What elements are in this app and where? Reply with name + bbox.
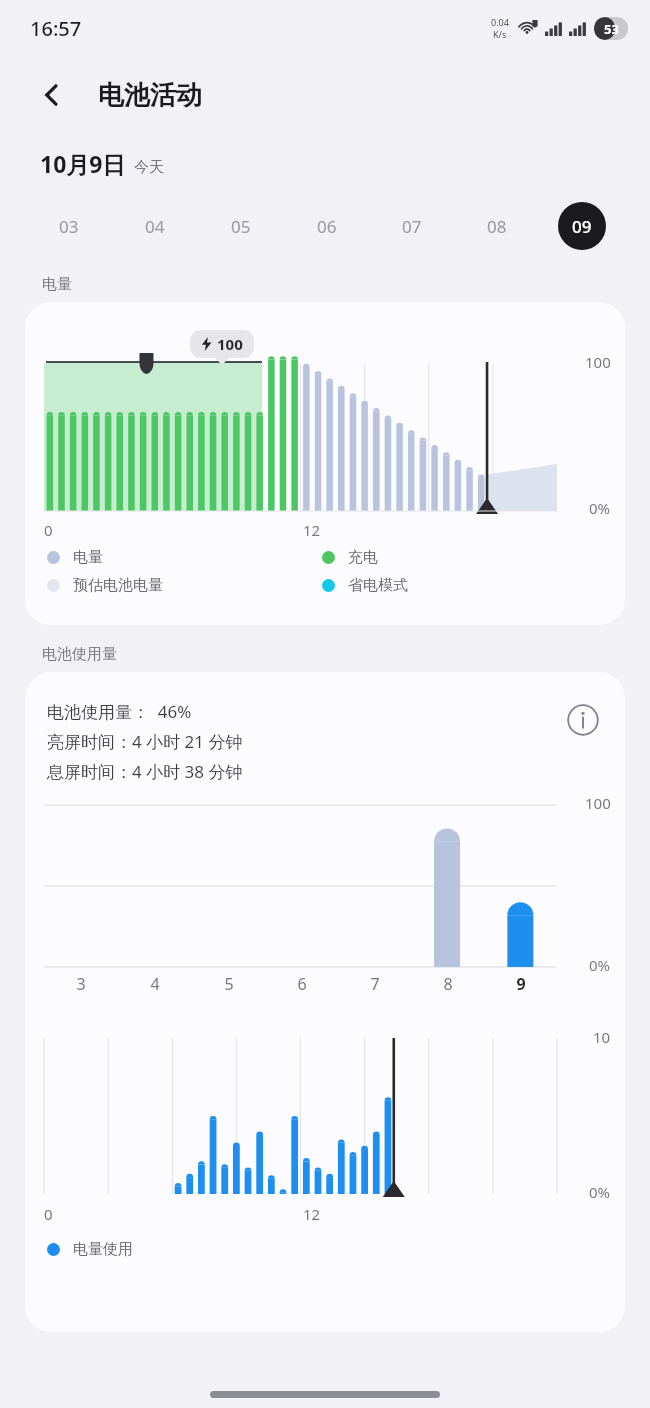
staticText: 预估电池电量	[73, 576, 163, 595]
staticText: 0%	[589, 1182, 611, 1202]
staticText: 电量	[73, 548, 103, 567]
staticText: 07	[402, 215, 422, 238]
staticText: 08	[487, 215, 507, 238]
staticText: 16:57	[30, 15, 82, 42]
staticText: 3	[76, 973, 86, 995]
staticText: 省电模式	[348, 576, 408, 595]
staticText: 05	[231, 215, 251, 238]
staticText: 充电	[348, 548, 378, 567]
staticText: 10月9日	[40, 148, 126, 179]
staticText: 100	[585, 352, 611, 372]
staticText: 亮屏时间：4 小时 21 分钟	[47, 730, 243, 753]
staticText: 09	[572, 215, 592, 238]
button[interactable]: 05	[198, 199, 284, 253]
staticText: 03	[59, 215, 79, 238]
button[interactable]: 08	[454, 199, 539, 253]
staticText: 0	[44, 1204, 53, 1224]
staticText: 6	[297, 973, 307, 995]
button[interactable]: 100	[25, 302, 625, 625]
staticText: 电池使用量： 46%	[47, 700, 192, 723]
button[interactable]: 电池使用量： 46%	[25, 672, 625, 1332]
button[interactable]: Back	[28, 71, 76, 119]
button[interactable]: 04	[112, 199, 198, 253]
staticText: 5	[224, 973, 234, 995]
button[interactable]: 03	[26, 199, 112, 253]
staticText: 9	[516, 973, 526, 995]
staticText: 息屏时间：4 小时 38 分钟	[47, 760, 243, 783]
staticText: 4	[150, 973, 160, 995]
staticText: 电量使用	[73, 1240, 133, 1259]
button[interactable]: 07	[369, 199, 454, 253]
staticText: 04	[145, 215, 165, 238]
staticText: 电池使用量	[42, 645, 117, 664]
staticText: 06	[317, 215, 337, 238]
staticText: 0.04	[491, 16, 509, 28]
staticText: 12	[303, 1204, 321, 1224]
staticText: K/s	[493, 28, 507, 40]
button[interactable]: 06	[284, 199, 369, 253]
staticText: 0%	[589, 955, 611, 975]
staticText: 0	[44, 520, 53, 540]
staticText: 电池活动	[98, 79, 202, 112]
button[interactable]: Info	[563, 700, 603, 740]
staticText: 电量	[42, 275, 72, 294]
staticText: 0%	[589, 498, 611, 518]
button[interactable]: 09	[539, 199, 624, 253]
staticText: 100	[585, 793, 611, 813]
staticText: 53	[604, 20, 619, 38]
staticText: 8	[443, 973, 453, 995]
staticText: 10	[593, 1027, 611, 1047]
staticText: 今天	[134, 158, 164, 177]
staticText: 7	[370, 973, 380, 995]
staticText: 100	[217, 334, 243, 354]
staticText: 12	[303, 520, 321, 540]
